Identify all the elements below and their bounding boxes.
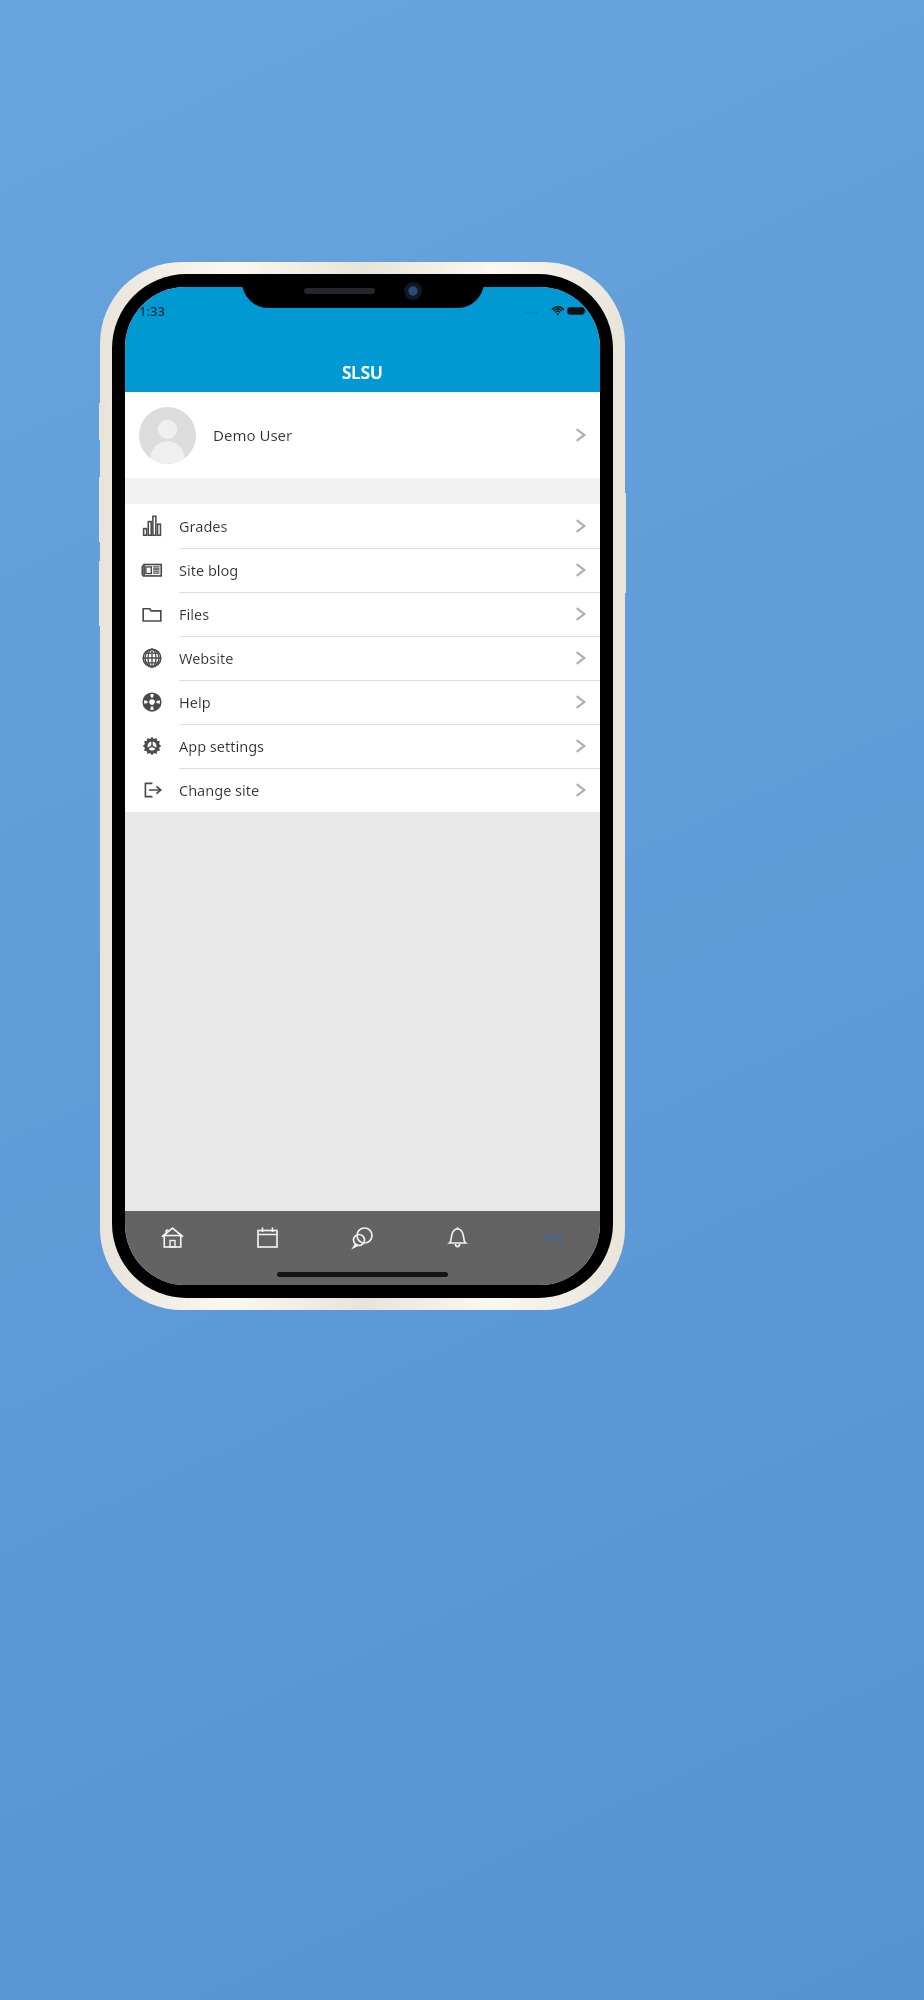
button[interactable]: Messages	[315, 1211, 410, 1263]
staticText: SLSU	[342, 361, 383, 384]
button[interactable]: Calendar	[220, 1211, 315, 1263]
button[interactable]: Files	[125, 592, 600, 636]
staticText: Help	[179, 692, 575, 712]
button[interactable]: More	[505, 1211, 600, 1263]
button[interactable]: Help	[125, 680, 600, 724]
staticText: Files	[179, 604, 575, 624]
button[interactable]: Notifications	[410, 1211, 505, 1263]
staticText: Grades	[179, 516, 575, 536]
staticText: 1:33	[139, 302, 165, 320]
button[interactable]: App settings	[125, 724, 600, 768]
button[interactable]: Website	[125, 636, 600, 680]
button[interactable]: Grades	[125, 504, 600, 548]
button[interactable]: Change site	[125, 768, 600, 812]
staticText: Site blog	[179, 560, 575, 580]
button[interactable]: Home	[125, 1211, 220, 1263]
staticText: Website	[179, 648, 575, 668]
staticText: Demo User	[213, 425, 575, 445]
button[interactable]: Demo User	[125, 392, 600, 478]
button[interactable]: Site blog	[125, 548, 600, 592]
staticText: Change site	[179, 780, 575, 800]
staticText: App settings	[179, 736, 575, 756]
